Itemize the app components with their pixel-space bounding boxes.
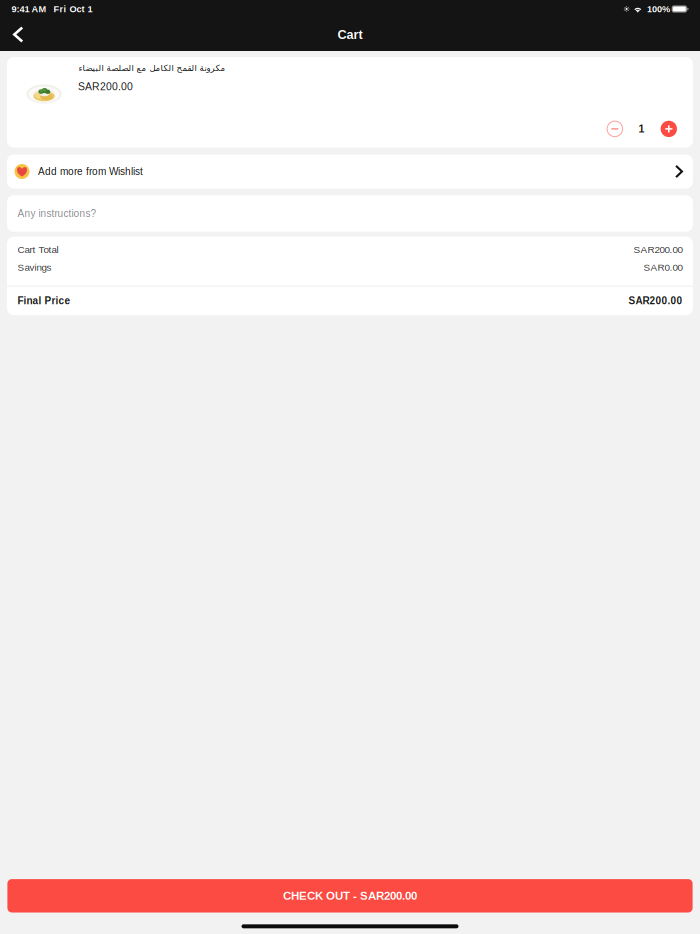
staticText: 9:41 AM: [11, 4, 46, 14]
staticText: Add more from Wishlist: [38, 166, 143, 177]
staticText: 1: [639, 123, 645, 135]
staticText: Final Price: [18, 295, 71, 306]
button[interactable]: Back: [0, 20, 35, 49]
staticText: SAR0.00: [643, 262, 682, 273]
staticText: Cart Total: [18, 244, 59, 255]
staticText: مكرونة القمح الكامل مع الصلصة البيضاء: [78, 63, 225, 73]
button[interactable]: CHECK OUT - SAR200.00: [7, 879, 693, 912]
staticText: 100%: [647, 4, 670, 14]
staticText: Fri Oct 1: [53, 4, 92, 14]
button[interactable]: Add more from Wishlist: [7, 154, 693, 188]
staticText: Cart: [337, 27, 362, 42]
button[interactable]: Increase quantity: [661, 121, 677, 137]
staticText: Any instructions?: [18, 208, 97, 219]
staticText: SAR200.00: [78, 81, 133, 92]
button[interactable]: Any instructions?: [7, 195, 693, 232]
button[interactable]: Decrease quantity: [607, 121, 623, 137]
staticText: SAR200.00: [633, 244, 682, 255]
staticText: Savings: [18, 262, 52, 273]
staticText: SAR200.00: [628, 295, 682, 306]
staticText: CHECK OUT - SAR200.00: [283, 889, 417, 902]
